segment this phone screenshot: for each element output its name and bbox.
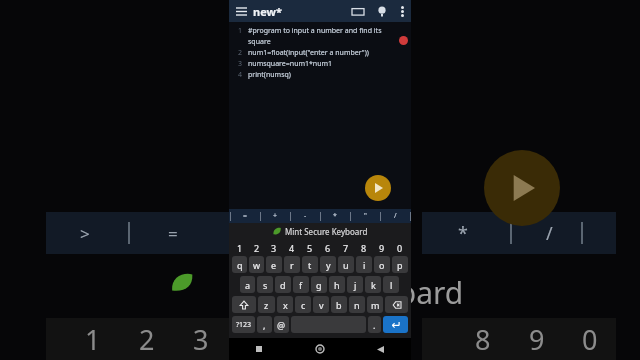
button[interactable]: Error: [399, 36, 408, 45]
button[interactable]: 0: [391, 241, 409, 254]
staticText: t: [308, 259, 312, 271]
button[interactable]: y: [320, 256, 336, 273]
staticText: /: [546, 221, 553, 246]
button[interactable]: Back: [350, 338, 411, 360]
button[interactable]: a: [240, 276, 255, 293]
staticText: numsquare=num1*num1: [248, 59, 333, 69]
staticText: oard: [398, 272, 464, 313]
staticText: 8: [475, 321, 491, 358]
staticText: i: [363, 259, 366, 271]
staticText: b: [336, 299, 342, 311]
button[interactable]: ,: [257, 316, 272, 333]
button[interactable]: Menu: [229, 0, 253, 22]
staticText: 2: [139, 321, 155, 358]
button[interactable]: i: [356, 256, 372, 273]
button[interactable]: Run: [365, 175, 391, 201]
staticText: =: [168, 222, 178, 245]
staticText: u: [343, 259, 349, 271]
staticText: -: [304, 211, 307, 221]
button[interactable]: t: [302, 256, 318, 273]
button[interactable]: ?123: [232, 316, 255, 333]
staticText: s: [263, 279, 268, 291]
button[interactable]: m: [367, 296, 383, 313]
staticText: 6: [325, 242, 331, 254]
button[interactable]: w: [249, 256, 264, 273]
staticText: e: [271, 259, 277, 271]
staticText: 2: [254, 242, 260, 254]
staticText: 9: [529, 321, 545, 358]
staticText: c: [301, 299, 306, 311]
staticText: j: [354, 279, 357, 291]
button[interactable]: n: [349, 296, 365, 313]
button[interactable]: +: [261, 209, 289, 223]
button[interactable]: o: [374, 256, 390, 273]
staticText: 1: [85, 321, 101, 358]
button[interactable]: 5: [301, 241, 319, 254]
button[interactable]: d: [275, 276, 291, 293]
button[interactable]: 4: [283, 241, 301, 254]
button[interactable]: u: [338, 256, 354, 273]
button[interactable]: 8: [355, 241, 373, 254]
staticText: z: [264, 299, 269, 311]
staticText: r: [290, 259, 294, 271]
button[interactable]: 2: [248, 241, 265, 254]
button[interactable]: x: [277, 296, 293, 313]
button[interactable]: s: [257, 276, 273, 293]
button[interactable]: c: [295, 296, 311, 313]
staticText: o: [379, 259, 385, 271]
button[interactable]: 1: [231, 241, 248, 254]
button[interactable]: h: [329, 276, 345, 293]
button[interactable]: Enter: [383, 316, 408, 333]
staticText: w: [253, 259, 261, 271]
button[interactable]: g: [311, 276, 327, 293]
staticText: 3: [238, 59, 243, 69]
button[interactable]: ": [351, 209, 379, 223]
button[interactable]: .: [368, 316, 381, 333]
button[interactable]: /: [381, 209, 409, 223]
button[interactable]: z: [258, 296, 275, 313]
staticText: 5: [307, 242, 313, 254]
staticText: Mint Secure Keyboard: [285, 226, 368, 237]
button[interactable]: Hint: [371, 0, 393, 22]
staticText: h: [334, 279, 340, 291]
button[interactable]: p: [392, 256, 408, 273]
button[interactable]: *: [321, 209, 349, 223]
staticText: 1: [238, 26, 243, 36]
button[interactable]: Shift: [232, 296, 256, 313]
button[interactable]: k: [365, 276, 381, 293]
button[interactable]: Folder: [345, 0, 371, 22]
button[interactable]: More options: [393, 0, 411, 22]
button[interactable]: 6: [319, 241, 337, 254]
button[interactable]: f: [293, 276, 309, 293]
button[interactable]: Recents: [229, 338, 289, 360]
staticText: 4: [289, 242, 295, 254]
staticText: =: [243, 211, 248, 221]
staticText: print(numsq): [248, 70, 291, 80]
button[interactable]: e: [266, 256, 282, 273]
button[interactable]: 7: [337, 241, 355, 254]
staticText: /: [394, 211, 397, 221]
staticText: @: [277, 319, 286, 331]
staticText: y: [326, 259, 331, 271]
button[interactable]: l: [383, 276, 399, 293]
staticText: 8: [361, 242, 367, 254]
staticText: 4: [238, 70, 243, 80]
staticText: ": [364, 211, 367, 221]
button[interactable]: Backspace: [385, 296, 408, 313]
button[interactable]: -: [291, 209, 319, 223]
button[interactable]: r: [284, 256, 300, 273]
button[interactable]: q: [232, 256, 247, 273]
button[interactable]: 9: [373, 241, 391, 254]
staticText: ?123: [236, 320, 252, 330]
button[interactable]: =: [231, 209, 259, 223]
staticText: 7: [343, 242, 349, 254]
button[interactable]: Home: [289, 338, 350, 360]
button[interactable]: 3: [265, 241, 283, 254]
staticText: ,: [263, 319, 266, 331]
button[interactable]: b: [331, 296, 347, 313]
button[interactable]: v: [313, 296, 329, 313]
button[interactable]: @: [274, 316, 289, 333]
staticText: num1=float(input("enter a number")): [248, 48, 369, 58]
button[interactable]: j: [347, 276, 363, 293]
